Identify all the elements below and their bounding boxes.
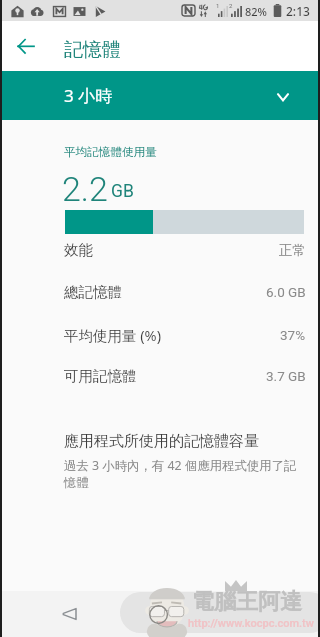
staticText: 6.0 GB	[266, 284, 306, 300]
button[interactable]: Back	[6, 26, 46, 66]
button[interactable]: 可用記憶體	[0, 355, 320, 397]
staticText: 37%	[280, 327, 306, 343]
button[interactable]: Home	[136, 591, 184, 637]
button[interactable]: 總記憶體	[0, 271, 320, 313]
staticText: 2.2	[62, 169, 108, 209]
staticText: 憶體	[64, 475, 89, 491]
staticText: 電腦王阿達	[192, 588, 302, 616]
staticText: 2	[229, 2, 233, 9]
staticText: 效能	[64, 241, 93, 259]
staticText: 總記憶體	[64, 283, 122, 301]
staticText: 平均記憶體使用量	[64, 145, 157, 160]
staticText: 應用程式所使用的記憶體容量	[64, 432, 259, 451]
button[interactable]: 3 小時	[0, 71, 320, 120]
staticText: 正常	[279, 242, 306, 259]
staticText: 過去 3 小時內，有 42 個應用程式使用了記	[64, 457, 297, 474]
staticText: 3.7 GB	[266, 368, 306, 384]
staticText: 82%	[245, 4, 267, 19]
staticText: 1	[216, 2, 220, 9]
button[interactable]: 平均使用量 (%)	[0, 314, 320, 356]
button[interactable]: 效能	[0, 229, 320, 271]
staticText: 平均使用量 (%)	[64, 325, 162, 345]
button[interactable]: Back	[45, 591, 93, 637]
staticText: 3 小時	[64, 84, 113, 107]
button[interactable]: Recent apps	[227, 591, 275, 637]
staticText: 2:13	[286, 3, 310, 19]
staticText: 記憶體	[64, 38, 121, 62]
staticText: http://www.kocpc.com.tw	[188, 617, 314, 630]
staticText: GB	[111, 181, 134, 202]
staticText: 可用記憶體	[64, 367, 137, 385]
